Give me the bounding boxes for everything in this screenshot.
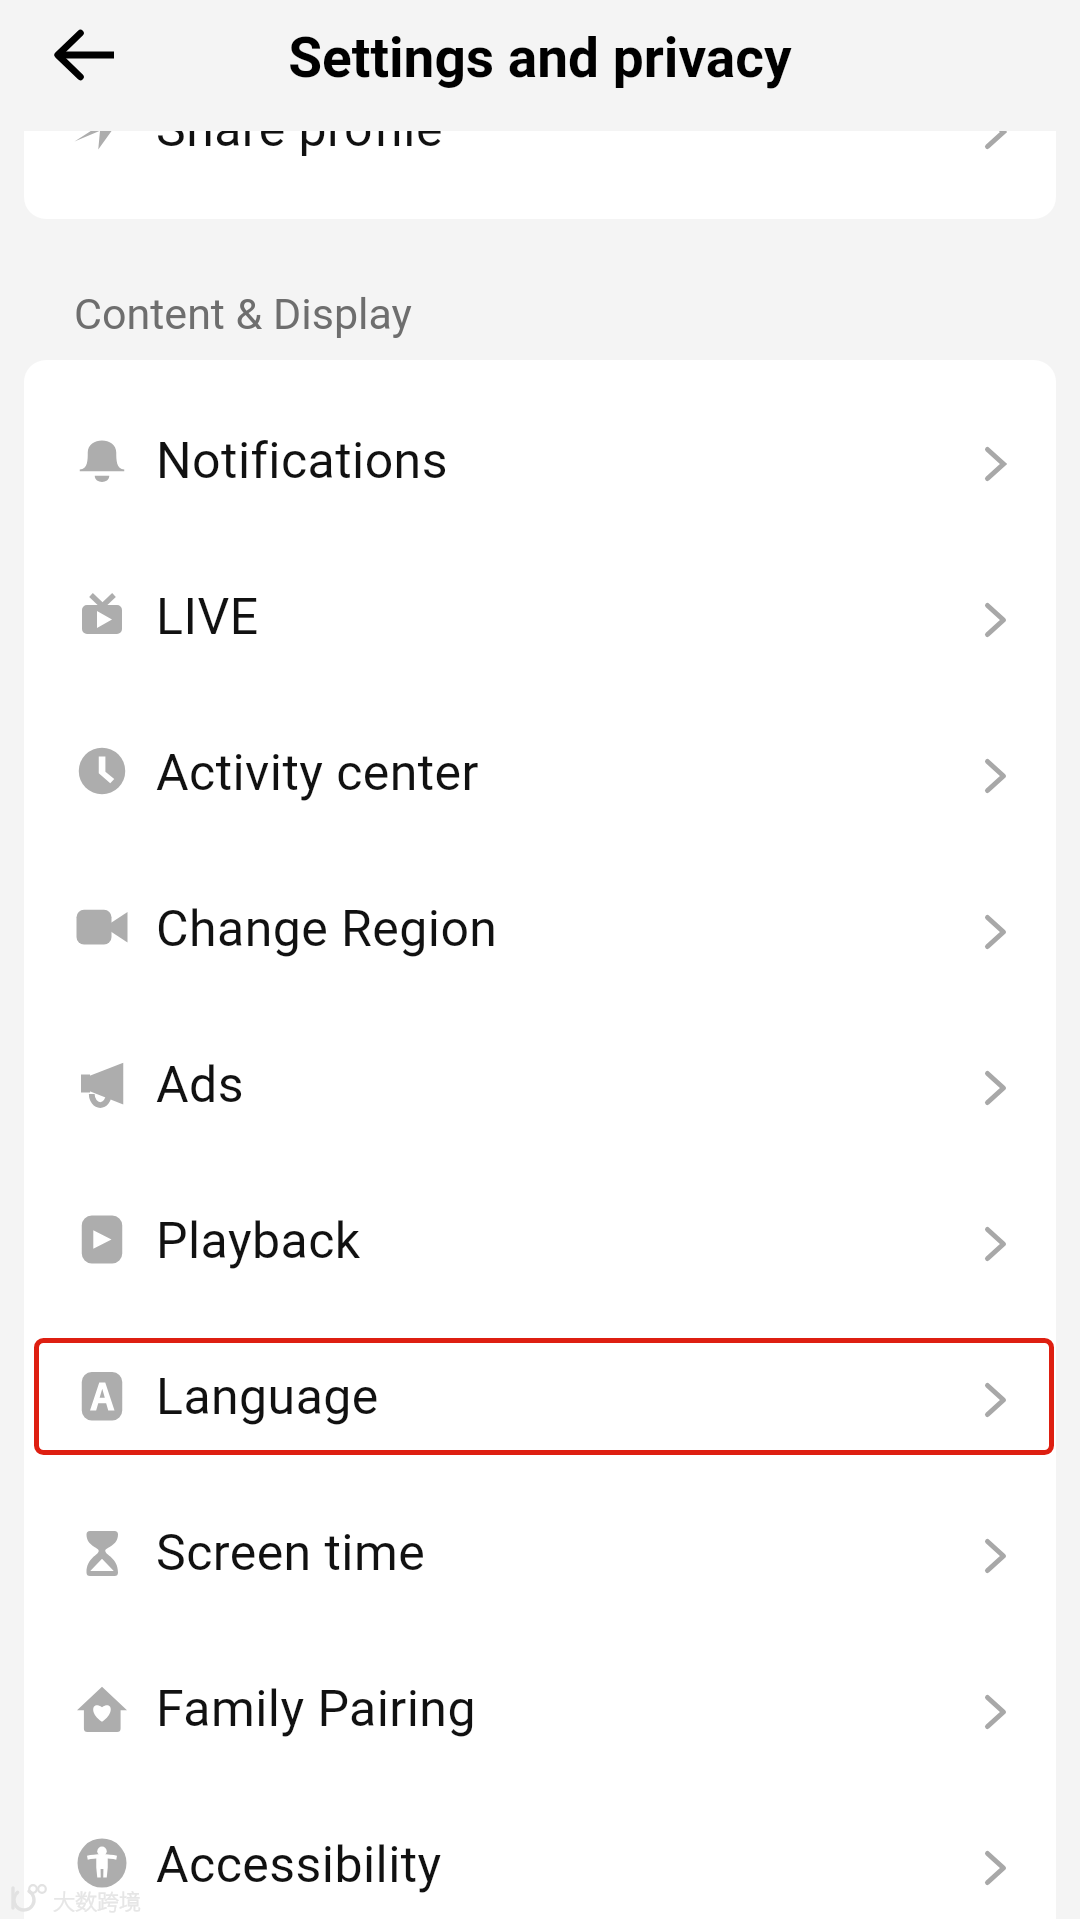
staticText: Playback: [156, 1212, 361, 1271]
staticText: Ads: [156, 1056, 244, 1115]
staticText: Screen time: [156, 1524, 426, 1583]
staticText: Settings and privacy: [288, 26, 792, 90]
staticText: Language: [156, 1368, 379, 1427]
button[interactable]: Activity center: [24, 693, 1056, 849]
button[interactable]: Screen time: [24, 1473, 1056, 1629]
staticText: Change Region: [156, 900, 498, 959]
button[interactable]: Ads: [24, 1005, 1056, 1161]
button[interactable]: Notifications: [24, 381, 1056, 537]
staticText: Family Pairing: [156, 1680, 476, 1739]
button[interactable]: Share profile: [24, 49, 1056, 205]
staticText: 大数跨境: [53, 1884, 142, 1916]
staticText: Content & Display: [74, 289, 412, 339]
staticText: Activity center: [156, 744, 479, 803]
button[interactable]: Back: [34, 5, 134, 105]
staticText: LIVE: [156, 588, 259, 647]
button[interactable]: Family Pairing: [24, 1629, 1056, 1785]
button[interactable]: LIVE: [24, 537, 1056, 693]
button[interactable]: Playback: [24, 1161, 1056, 1317]
staticText: Notifications: [156, 432, 448, 491]
staticText: Share profile: [156, 100, 443, 159]
button[interactable]: Language: [24, 1317, 1056, 1473]
button[interactable]: Change Region: [24, 849, 1056, 1005]
button[interactable]: Accessibility: [24, 1785, 1056, 1919]
staticText: Accessibility: [156, 1836, 442, 1895]
